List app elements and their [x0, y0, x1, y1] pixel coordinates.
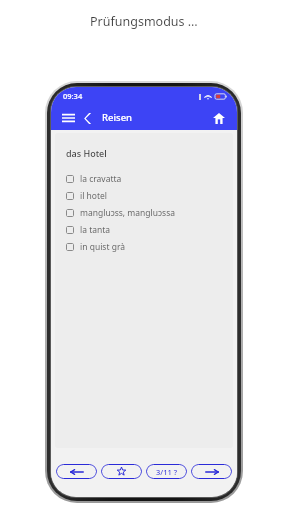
staticText: il hotel	[80, 190, 108, 202]
staticText: mangluɔss, mangluɔssa	[80, 207, 175, 219]
staticText: das Hotel	[66, 147, 107, 159]
button[interactable]: Back	[81, 109, 95, 127]
button[interactable]: Progress	[146, 464, 187, 479]
staticText: 3/11 ?	[156, 467, 178, 477]
button[interactable]: Home	[210, 109, 228, 127]
button[interactable]: Previous	[56, 464, 97, 479]
staticText: in quist grà	[80, 241, 126, 253]
staticText: Reisen	[102, 111, 133, 124]
button[interactable]: Menu	[60, 109, 76, 127]
button[interactable]: Next	[191, 464, 232, 479]
button[interactable]: il hotel	[66, 187, 233, 204]
button[interactable]: in quist grà	[66, 238, 233, 255]
staticText: Prüfungsmodus …	[90, 13, 198, 30]
staticText: la tanta	[80, 224, 111, 236]
button[interactable]: Favorite	[101, 464, 142, 479]
button[interactable]: la tanta	[66, 221, 233, 238]
staticText: 09:34	[63, 91, 83, 101]
button[interactable]: la cravatta	[66, 170, 233, 187]
staticText: la cravatta	[80, 173, 122, 185]
button[interactable]: mangluɔss, mangluɔssa	[66, 204, 233, 221]
